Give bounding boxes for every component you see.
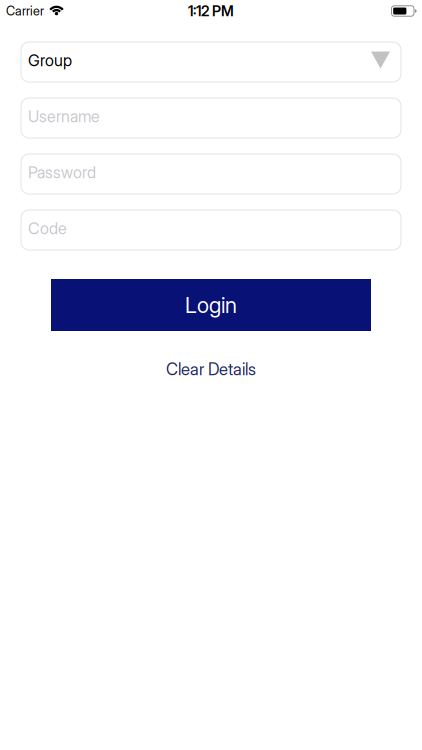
staticText: Group: [28, 51, 72, 70]
staticText: Password: [28, 163, 96, 182]
button[interactable]: Code: [21, 210, 401, 250]
button[interactable]: Group: [21, 42, 401, 82]
button[interactable]: Username: [21, 98, 401, 138]
button[interactable]: Password: [21, 154, 401, 194]
button[interactable]: Clear Details: [166, 359, 256, 379]
staticText: Carrier: [6, 3, 44, 19]
staticText: Login: [185, 292, 237, 318]
staticText: Clear Details: [166, 359, 256, 379]
staticText: Code: [28, 219, 67, 238]
staticText: 1:12 PM: [188, 2, 234, 20]
staticText: Username: [28, 107, 100, 126]
button[interactable]: Login: [51, 279, 371, 331]
